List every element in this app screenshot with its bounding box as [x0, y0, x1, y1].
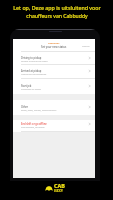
- button[interactable]: Start job: [13, 80, 95, 91]
- staticText: Arrived at pickup: [21, 69, 42, 72]
- staticText: Break, toilet, private, administration: [21, 109, 57, 112]
- staticText: End shift or go offline: [21, 122, 47, 125]
- button[interactable]: End shift or go offline: [13, 118, 95, 129]
- staticText: Start job: [21, 84, 32, 87]
- staticText: Cancel: [82, 44, 90, 47]
- staticText: chauffeurs van Cabbuddy: [26, 13, 88, 20]
- staticText: Other: [21, 105, 28, 108]
- staticText: Stop working, go offline: [21, 126, 45, 129]
- staticText: BUDDY: [54, 189, 63, 193]
- staticText: Driving to pickup the client: [21, 60, 48, 63]
- staticText: CAB: [54, 182, 65, 189]
- button[interactable]: Other: [13, 101, 95, 112]
- staticText: Driving to pickup: [21, 56, 42, 59]
- button[interactable]: Cancel: [79, 42, 93, 48]
- staticText: Let op, Deze app is uitsluitend voor: [13, 4, 101, 11]
- button[interactable]: Cab Buddy logo: [45, 182, 65, 193]
- staticText: Cabbuddy: [48, 41, 60, 44]
- staticText: Set your new status: [41, 45, 67, 49]
- staticText: Passenger on board: [21, 88, 41, 91]
- button[interactable]: Arrived at pickup: [13, 65, 95, 76]
- button[interactable]: Driving to pickup: [13, 52, 95, 63]
- staticText: Waiting for the passenger: [21, 73, 47, 76]
